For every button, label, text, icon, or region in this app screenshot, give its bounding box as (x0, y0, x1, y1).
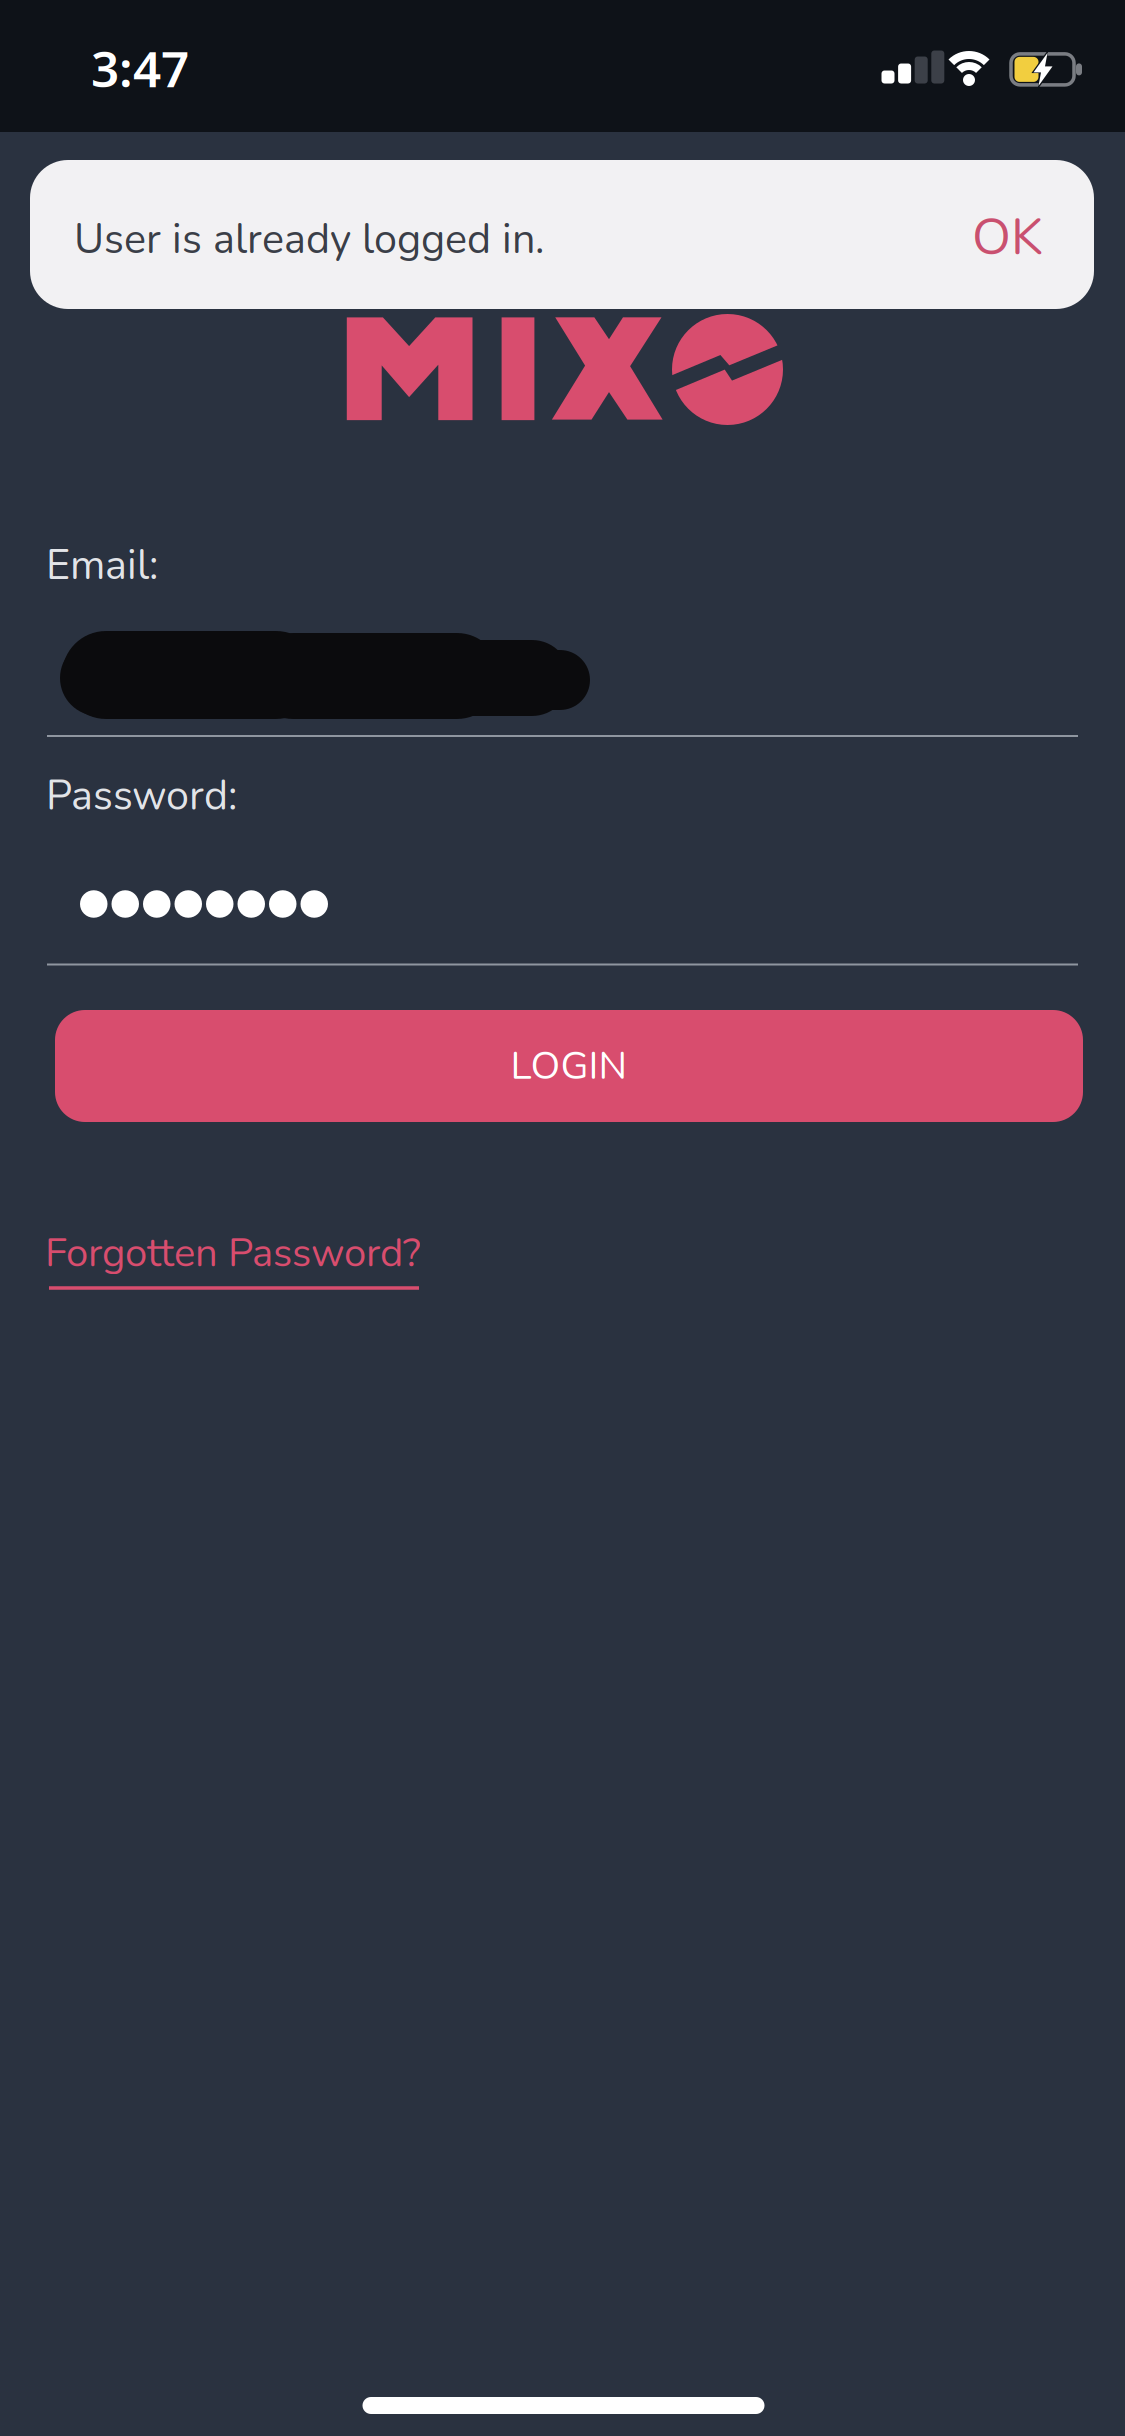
button[interactable]: OK (972, 200, 1043, 269)
staticText: LOGIN (510, 1040, 627, 1092)
button[interactable]: Forgotten Password? (45, 1226, 421, 1280)
staticText: OK (972, 203, 1043, 272)
staticText: 3:47 (91, 35, 189, 101)
button[interactable]: LOGIN (55, 1010, 1083, 1122)
staticText: Email: (46, 537, 158, 594)
staticText: Forgotten Password? (45, 1226, 421, 1280)
staticText: Password: (46, 768, 237, 824)
staticText: User is already logged in. (74, 211, 544, 268)
